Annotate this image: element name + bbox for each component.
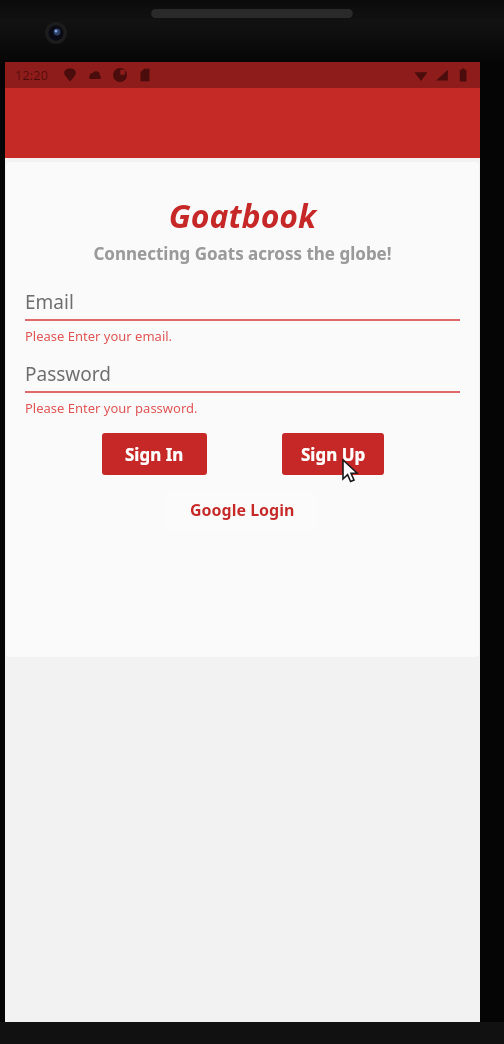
button[interactable]: Google Login — [167, 490, 318, 530]
button[interactable]: Sign In — [102, 433, 207, 475]
button[interactable]: Password — [25, 357, 460, 391]
staticText: Goatbook — [6, 194, 479, 238]
staticText: Please Enter your email. — [25, 327, 173, 345]
staticText: Sign In — [125, 443, 184, 466]
staticText: 12:20 — [15, 66, 49, 84]
staticText: Google Login — [190, 499, 295, 521]
staticText: Connecting Goats across the globe! — [6, 242, 479, 265]
staticText: Please Enter your password. — [25, 399, 198, 417]
staticText: Sign Up — [301, 443, 366, 466]
staticText: Password — [25, 361, 111, 387]
staticText: Email — [25, 289, 74, 315]
button[interactable]: Email — [25, 285, 460, 319]
button[interactable]: Sign Up — [282, 433, 384, 475]
